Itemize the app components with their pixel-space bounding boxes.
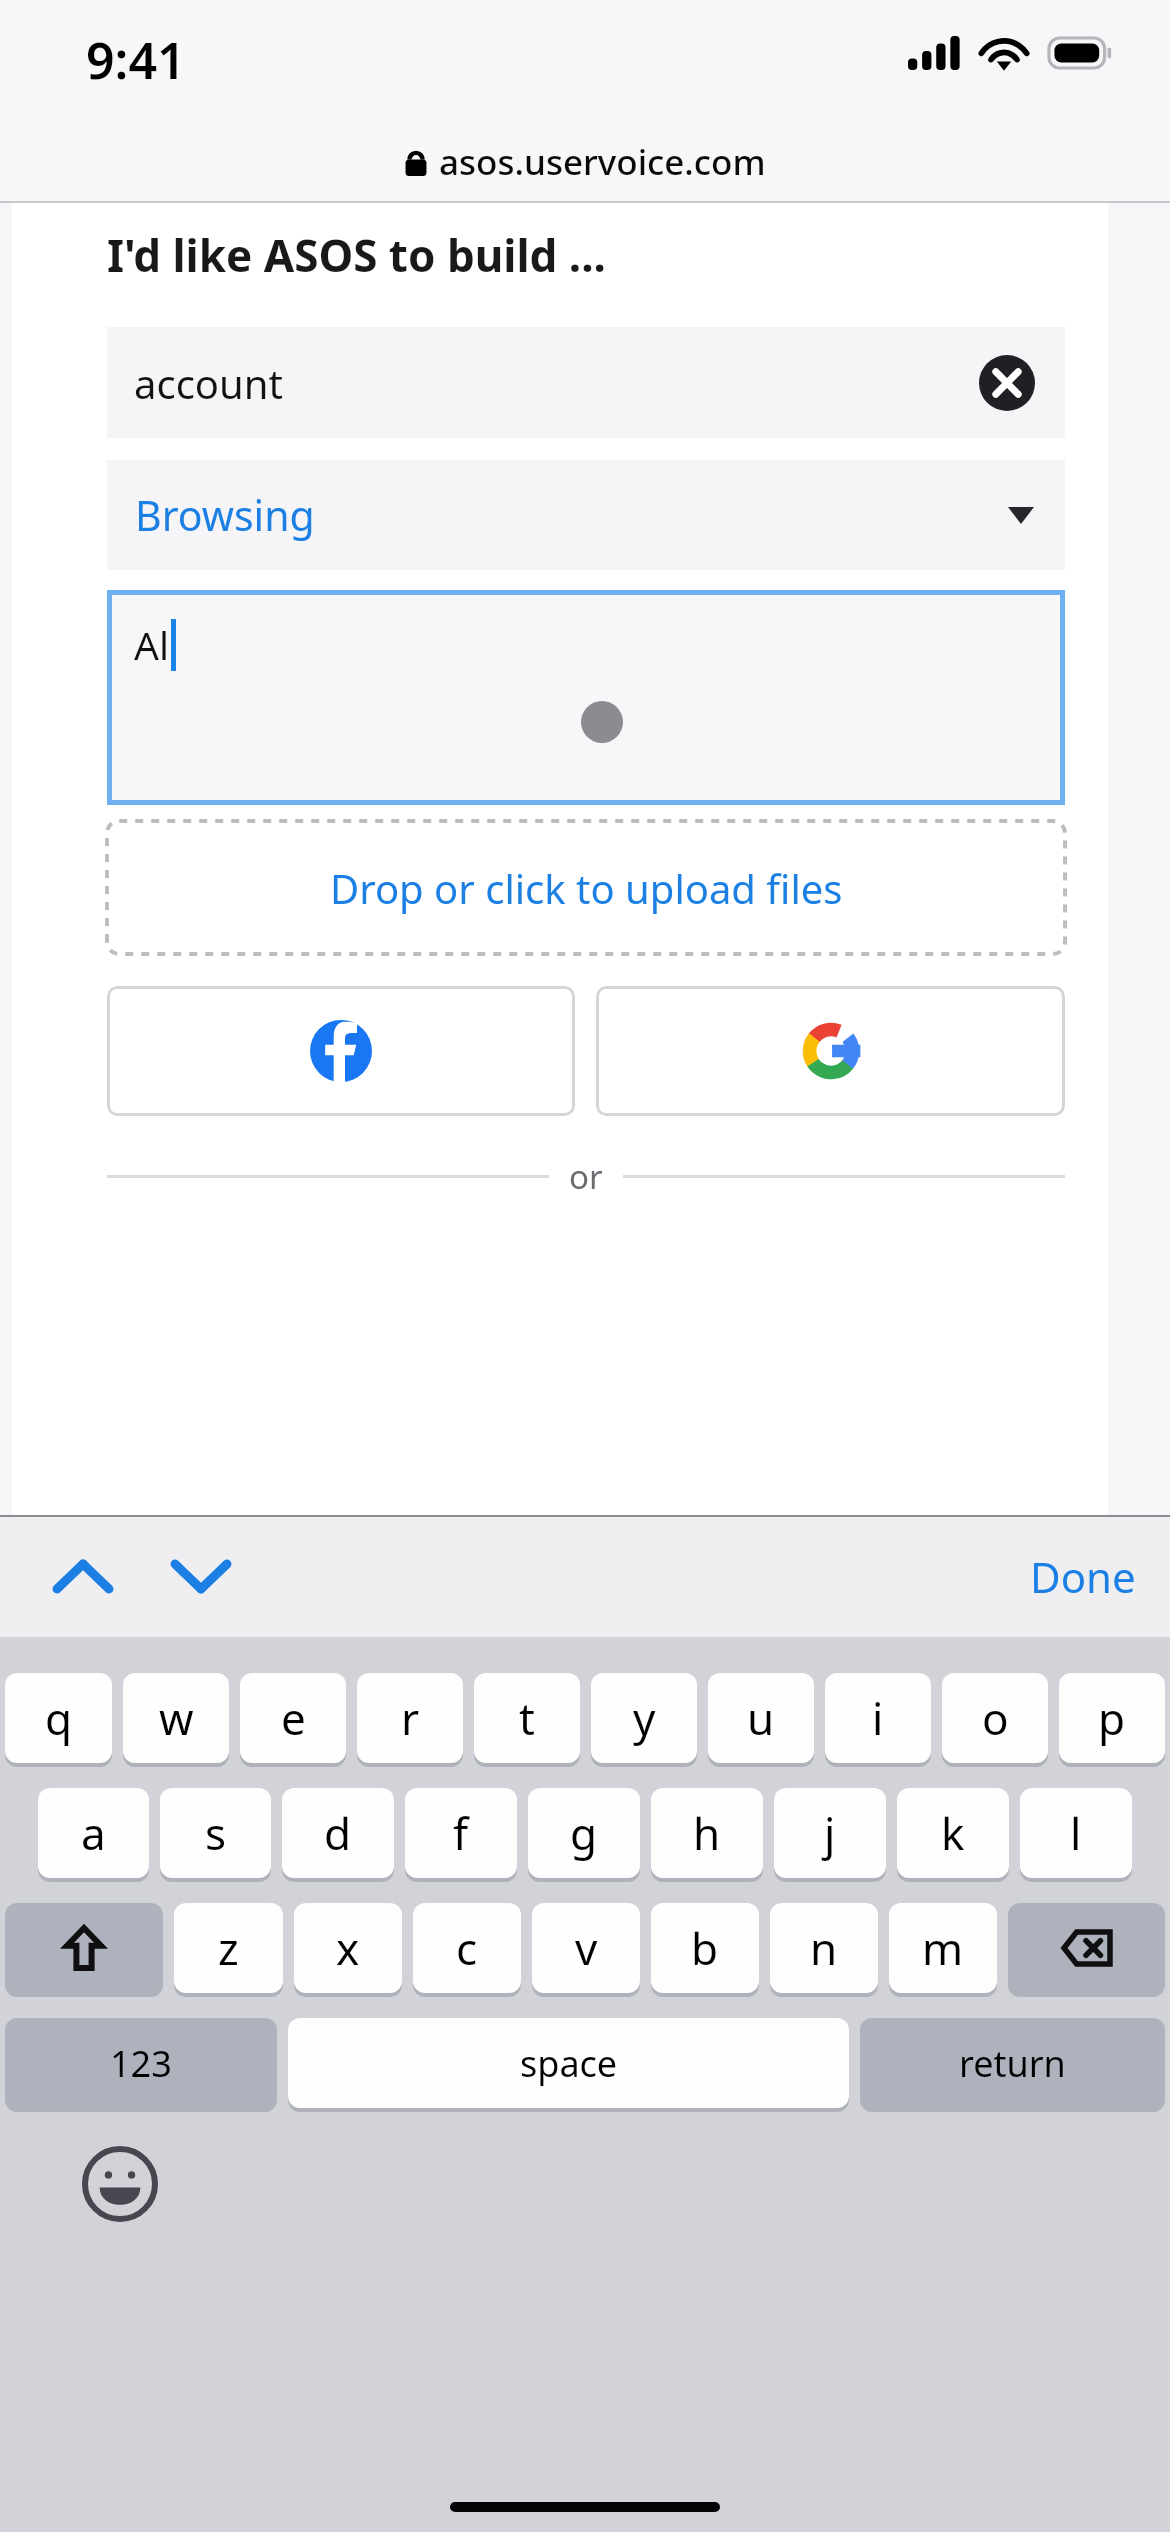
button[interactable]: z <box>174 1903 283 1993</box>
button[interactable]: Emoji <box>78 2142 162 2226</box>
button[interactable]: w <box>123 1673 229 1763</box>
staticText: i <box>872 1688 884 1748</box>
staticText: w <box>159 1688 194 1748</box>
staticText: n <box>810 1918 838 1978</box>
button[interactable]: j <box>774 1788 886 1878</box>
button[interactable]: account <box>107 327 1065 438</box>
staticText: o <box>982 1688 1009 1748</box>
staticText: x <box>336 1918 360 1978</box>
staticText: m <box>922 1918 964 1978</box>
staticText: q <box>45 1688 73 1748</box>
button[interactable]: e <box>240 1673 346 1763</box>
button[interactable]: s <box>160 1788 271 1878</box>
button[interactable]: Sign in <box>596 986 1065 1116</box>
button[interactable]: o <box>942 1673 1048 1763</box>
staticText: f <box>453 1803 469 1863</box>
button[interactable]: i <box>825 1673 931 1763</box>
button[interactable]: r <box>357 1673 463 1763</box>
button[interactable]: Browsing <box>107 460 1065 570</box>
staticText: u <box>747 1688 775 1748</box>
button[interactable]: t <box>474 1673 580 1763</box>
button[interactable] <box>5 1903 163 1993</box>
staticText: c <box>456 1918 478 1978</box>
staticText: Done <box>1030 1548 1136 1605</box>
button[interactable]: c <box>413 1903 521 1993</box>
button[interactable]: y <box>591 1673 697 1763</box>
button[interactable]: Al <box>107 590 1065 805</box>
staticText: g <box>570 1803 598 1863</box>
button[interactable]: Sign in <box>107 986 575 1116</box>
staticText: l <box>1070 1803 1082 1863</box>
staticText: Drop or click to upload files <box>330 861 843 915</box>
staticText: b <box>691 1918 719 1978</box>
staticText: or <box>569 1154 603 1199</box>
staticText: return <box>959 2039 1066 2088</box>
staticText: Al <box>134 618 169 671</box>
staticText: r <box>401 1688 420 1748</box>
button[interactable]: Done <box>1014 1534 1152 1619</box>
button[interactable]: Next field <box>148 1531 253 1621</box>
button[interactable]: m <box>889 1903 997 1993</box>
staticText: s <box>205 1803 227 1863</box>
button[interactable] <box>1008 1903 1165 1993</box>
staticText: I'd like ASOS to build ... <box>107 225 606 285</box>
button[interactable]: u <box>708 1673 814 1763</box>
staticText: p <box>1098 1688 1126 1748</box>
staticText: space <box>520 2039 618 2088</box>
staticText: k <box>941 1803 965 1863</box>
button[interactable]: Clear text <box>979 355 1035 411</box>
button[interactable]: b <box>651 1903 759 1993</box>
button[interactable]: h <box>651 1788 763 1878</box>
staticText: e <box>281 1688 306 1748</box>
staticText: t <box>519 1688 535 1748</box>
other: Shift <box>5 1903 163 1997</box>
staticText: a <box>81 1803 106 1863</box>
button[interactable]: v <box>532 1903 640 1993</box>
button[interactable]: l <box>1020 1788 1132 1878</box>
button[interactable]: n <box>770 1903 878 1993</box>
button[interactable]: 123 <box>5 2018 277 2108</box>
button[interactable]: space <box>288 2018 849 2108</box>
staticText: account <box>134 356 283 410</box>
button[interactable]: d <box>282 1788 394 1878</box>
button[interactable]: Drop or click to upload files <box>107 821 1065 954</box>
staticText: j <box>824 1803 836 1863</box>
staticText: h <box>693 1803 721 1863</box>
button[interactable]: return <box>860 2018 1165 2108</box>
staticText: Browsing <box>135 487 315 543</box>
staticText: d <box>324 1803 352 1863</box>
button[interactable]: Previous field <box>30 1531 135 1621</box>
staticText: v <box>575 1918 598 1978</box>
button[interactable]: q <box>5 1673 112 1763</box>
button[interactable]: f <box>405 1788 517 1878</box>
button[interactable]: g <box>528 1788 640 1878</box>
other: Backspace <box>1008 1903 1165 1997</box>
button[interactable]: k <box>897 1788 1009 1878</box>
staticText: z <box>218 1918 239 1978</box>
staticText: 9:41 <box>86 26 186 94</box>
staticText: asos.uservoice.com <box>439 138 766 186</box>
staticText: 123 <box>110 2039 172 2088</box>
staticText: y <box>633 1688 656 1748</box>
button[interactable]: p <box>1059 1673 1165 1763</box>
button[interactable]: x <box>294 1903 402 1993</box>
button[interactable]: a <box>38 1788 149 1878</box>
